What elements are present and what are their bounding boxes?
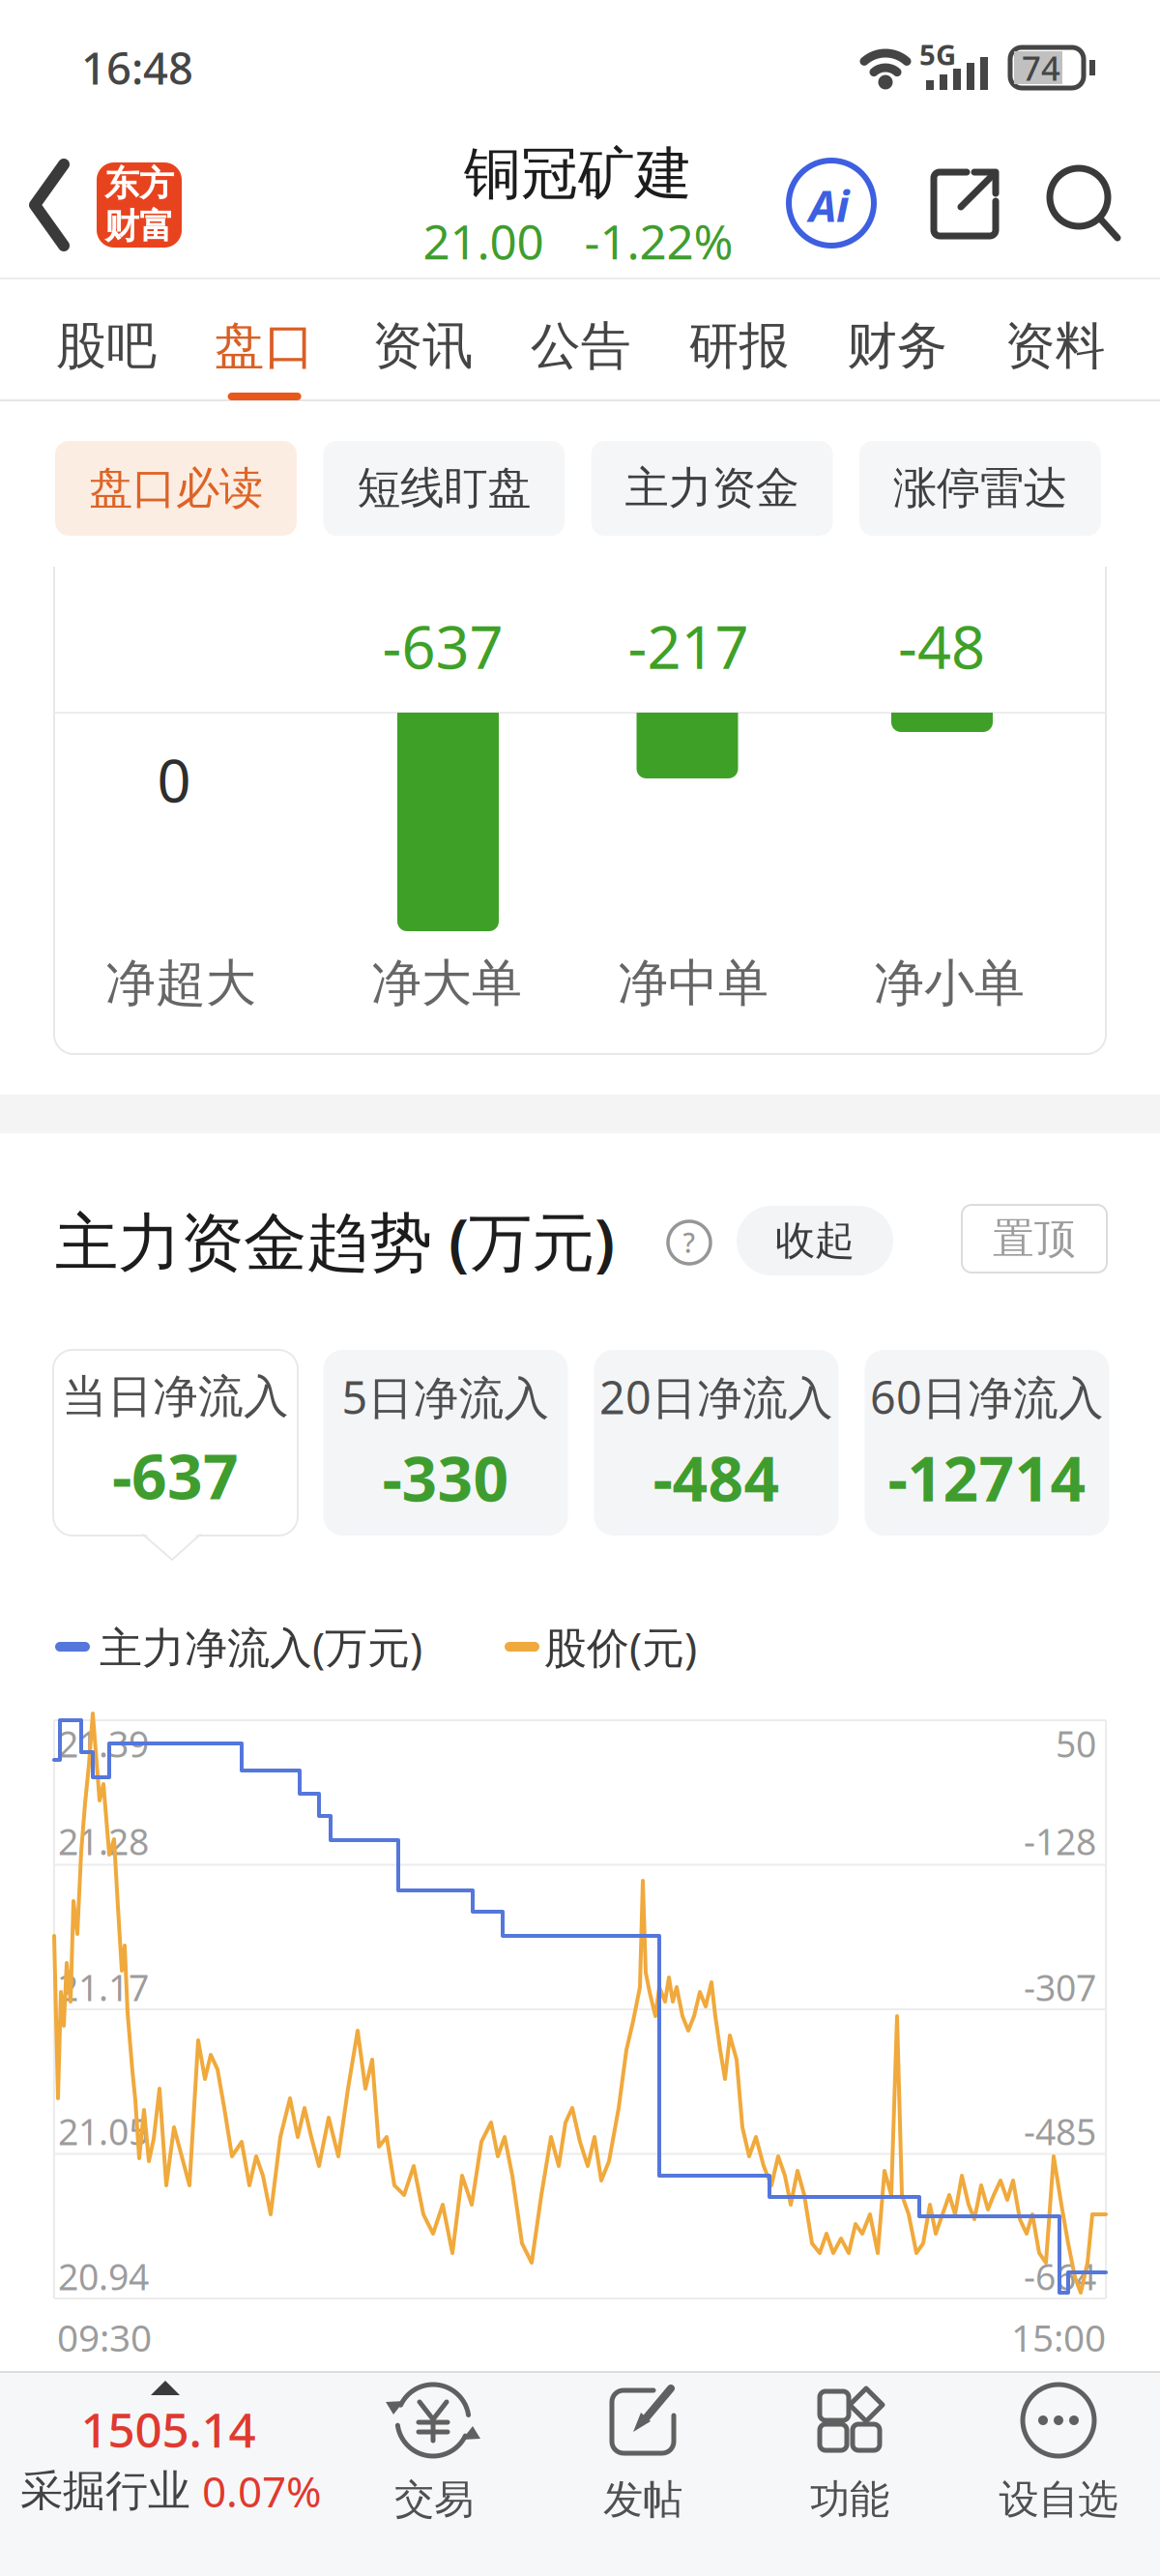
staticText: -664 <box>1024 2252 1096 2300</box>
button[interactable]: 当日净流入 <box>53 1350 298 1536</box>
button[interactable]: 资讯 <box>350 293 495 399</box>
button[interactable]: 研报 <box>666 293 811 399</box>
staticText: 21.39 <box>58 1719 149 1767</box>
staticText: -484 <box>653 1436 780 1519</box>
staticText: 发帖 <box>603 2475 682 2524</box>
button[interactable]: 资料 <box>983 293 1128 399</box>
button[interactable]: 搜索 <box>1037 160 1124 247</box>
staticText: -637 <box>382 607 503 685</box>
staticText: ? <box>683 1225 696 1261</box>
button[interactable]: 20日净流入 <box>594 1350 839 1536</box>
button[interactable]: 财务 <box>825 293 970 399</box>
button[interactable]: 主力资金 <box>591 441 833 536</box>
staticText: 采掘行业 <box>20 2465 190 2517</box>
button[interactable]: 5日净流入 <box>323 1350 568 1536</box>
button[interactable]: 东方财富 <box>97 162 182 248</box>
button[interactable]: 涨停雷达 <box>859 441 1101 536</box>
staticText: 21.00 <box>423 209 544 272</box>
staticText: 铜冠矿建 <box>464 139 692 209</box>
staticText: -217 <box>628 607 749 685</box>
staticText: 1505.14 <box>81 2397 256 2461</box>
staticText: -485 <box>1024 2107 1096 2155</box>
staticText: 股价(元) <box>544 1619 697 1675</box>
button[interactable]: 盘口必读 <box>55 441 297 536</box>
button[interactable]: 收起 <box>737 1206 893 1275</box>
staticText: -12714 <box>888 1436 1086 1519</box>
staticText: 财务 <box>847 315 947 377</box>
staticText: 盘口 <box>214 315 315 377</box>
staticText: 16:48 <box>81 39 193 97</box>
staticText: -1.22% <box>584 209 733 272</box>
staticText: 股吧 <box>56 315 157 377</box>
staticText: -128 <box>1024 1817 1096 1865</box>
staticText: Ai <box>809 175 850 235</box>
button[interactable]: 60日净流入 <box>865 1350 1109 1536</box>
staticText: 21.28 <box>58 1817 149 1865</box>
staticText: 21.05 <box>58 2107 149 2155</box>
button[interactable]: 分享 <box>921 161 1008 248</box>
staticText: 设自选 <box>999 2475 1118 2524</box>
button[interactable]: 公告 <box>508 293 653 399</box>
staticText: 74 <box>1022 45 1060 90</box>
staticText: 5日净流入 <box>342 1367 550 1427</box>
button[interactable]: 采掘行业 <box>7 2379 326 2572</box>
staticText: 0.07% <box>202 2463 322 2519</box>
staticText: 21.17 <box>58 1963 149 2011</box>
button[interactable]: 交易 <box>347 2369 521 2533</box>
staticText: 交易 <box>394 2475 474 2524</box>
button[interactable]: 盘口 <box>192 293 337 399</box>
staticText: 收起 <box>775 1216 855 1265</box>
staticText: 15:00 <box>1011 2312 1106 2362</box>
staticText: 20日净流入 <box>599 1367 833 1427</box>
staticText: 5G <box>919 35 956 73</box>
staticText: -307 <box>1024 1963 1096 2011</box>
staticText: 涨停雷达 <box>893 461 1067 515</box>
staticText: 主力资金趋势 (万元) <box>55 1199 615 1283</box>
staticText: 东方 <box>104 162 174 205</box>
button[interactable]: 返回 <box>16 152 84 258</box>
staticText: 50 <box>1056 1719 1096 1767</box>
staticText: 财富 <box>104 205 174 248</box>
staticText: -48 <box>898 607 985 685</box>
staticText: 公告 <box>531 315 631 377</box>
staticText: 研报 <box>689 315 789 377</box>
staticText: 置顶 <box>993 1213 1076 1264</box>
staticText: 资料 <box>1005 315 1105 377</box>
staticText: 20.94 <box>58 2252 149 2300</box>
staticText: 60日净流入 <box>870 1367 1104 1427</box>
button[interactable]: 置顶 <box>962 1205 1107 1273</box>
staticText: 0 <box>157 740 191 819</box>
staticText: 主力净流入(万元) <box>100 1619 422 1675</box>
button[interactable]: 功能 <box>763 2369 937 2533</box>
staticText: 净超大 <box>105 953 256 1014</box>
staticText: -330 <box>382 1436 509 1519</box>
staticText: 09:30 <box>57 2312 152 2362</box>
staticText: 短线盯盘 <box>357 461 531 515</box>
staticText: 资讯 <box>372 315 473 377</box>
button[interactable]: 设自选 <box>971 2369 1145 2533</box>
staticText: -637 <box>112 1434 239 1516</box>
button[interactable]: 股吧 <box>34 293 179 399</box>
staticText: 主力资金 <box>625 461 799 515</box>
staticText: 净中单 <box>618 953 768 1014</box>
staticText: 净大单 <box>371 953 522 1014</box>
button[interactable]: AI助手 <box>785 157 878 249</box>
button[interactable]: 短线盯盘 <box>323 441 565 536</box>
button[interactable]: 帮助 <box>660 1214 718 1272</box>
staticText: 功能 <box>810 2475 889 2524</box>
staticText: 当日净流入 <box>62 1369 289 1424</box>
staticText: 净小单 <box>874 953 1025 1014</box>
staticText: 盘口必读 <box>89 461 263 515</box>
button[interactable]: 发帖 <box>556 2369 730 2533</box>
